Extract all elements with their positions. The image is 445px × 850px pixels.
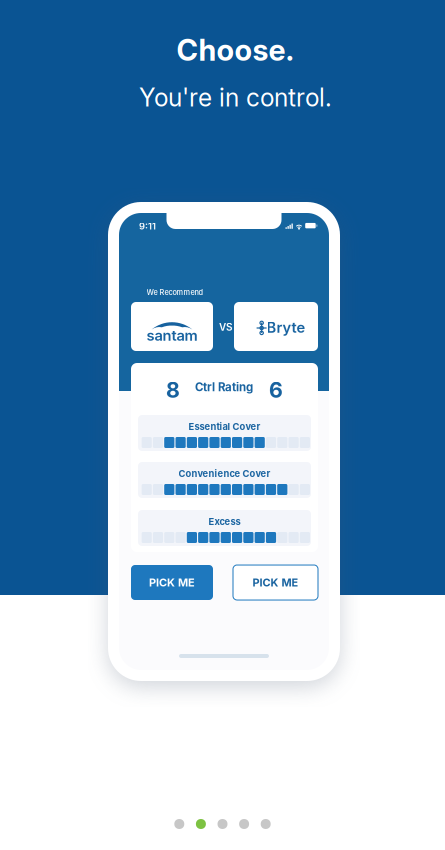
button[interactable]: Bryte — [234, 302, 318, 351]
staticText: We Recommend — [146, 288, 203, 297]
staticText: 8 — [166, 377, 180, 403]
staticText: Ctrl Rating — [195, 380, 253, 394]
staticText: VS — [219, 321, 233, 333]
button[interactable]: PICK ME — [131, 565, 213, 600]
staticText: 6 — [269, 377, 283, 403]
staticText: Bryte — [266, 319, 305, 336]
staticText: PICK ME — [149, 576, 195, 589]
staticText: santam — [146, 327, 197, 344]
staticText: PICK ME — [252, 576, 298, 589]
button[interactable]: santam — [131, 302, 213, 351]
staticText: 9:11 — [139, 220, 156, 232]
staticText: Essential Cover — [188, 421, 260, 432]
button[interactable]: PICK ME — [233, 565, 318, 600]
staticText: Choose. — [176, 32, 294, 68]
staticText: Excess — [208, 516, 240, 527]
staticText: You're in control. — [139, 83, 332, 112]
staticText: Convenience Cover — [178, 468, 270, 479]
